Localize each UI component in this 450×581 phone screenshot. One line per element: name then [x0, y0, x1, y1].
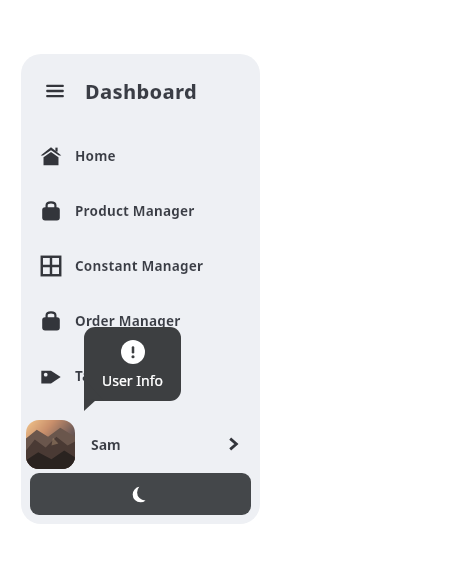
staticText: Constant Manager — [75, 257, 204, 275]
button[interactable]: Product Manager — [21, 183, 260, 238]
button[interactable]: Order Manager — [21, 293, 260, 348]
staticText: Home — [75, 147, 116, 165]
staticText: Tag Manager — [75, 367, 165, 385]
button[interactable]: Toggle dark mode — [30, 473, 251, 515]
other: Open profile — [218, 429, 248, 459]
button[interactable]: Sam — [21, 415, 260, 473]
button[interactable]: Constant Manager — [21, 238, 260, 293]
staticText: Dashboard — [85, 78, 197, 105]
button[interactable]: Menu — [39, 75, 71, 107]
button[interactable]: Home — [21, 128, 260, 183]
staticText: User Info — [102, 371, 163, 390]
staticText: Sam — [91, 435, 121, 454]
staticText: Product Manager — [75, 202, 195, 220]
staticText: Order Manager — [75, 312, 181, 330]
button[interactable]: Tag Manager — [21, 348, 260, 403]
